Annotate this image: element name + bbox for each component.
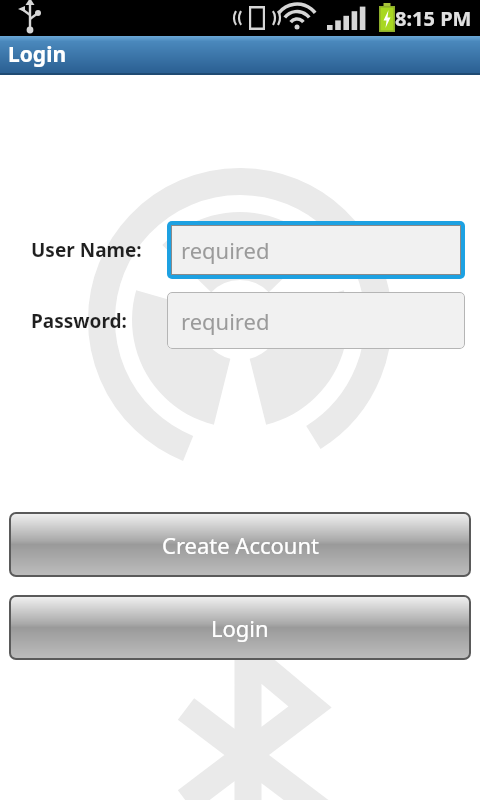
staticText: User Name: [31,237,142,263]
staticText: required [181,306,270,336]
staticText: Password: [31,308,127,334]
button[interactable]: required [171,225,461,275]
staticText: required [181,235,270,265]
button[interactable]: Login [11,597,469,658]
staticText: Create Account [162,530,319,560]
button[interactable]: required [167,292,465,349]
staticText: 8:15 PM [395,5,472,32]
staticText: Login [8,40,67,69]
button[interactable]: Create Account [11,514,469,575]
staticText: Login [211,613,269,643]
